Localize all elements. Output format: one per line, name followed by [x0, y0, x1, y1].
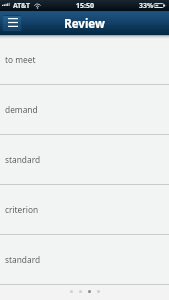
button[interactable]: to meet: [0, 35, 169, 85]
button[interactable]: standard: [0, 135, 169, 185]
staticText: standard: [5, 254, 41, 265]
staticText: standard: [5, 154, 41, 165]
button[interactable]: standard: [0, 235, 169, 285]
staticText: AT&T: [13, 1, 30, 10]
button[interactable]: demand: [0, 85, 169, 135]
staticText: 33%: [139, 1, 154, 10]
staticText: 15:50: [76, 1, 94, 11]
staticText: demand: [5, 104, 38, 115]
staticText: to meet: [5, 54, 36, 65]
button[interactable]: criterion: [0, 185, 169, 235]
staticText: Review: [64, 16, 105, 32]
button[interactable]: Menu: [2, 15, 22, 31]
staticText: criterion: [5, 204, 39, 215]
